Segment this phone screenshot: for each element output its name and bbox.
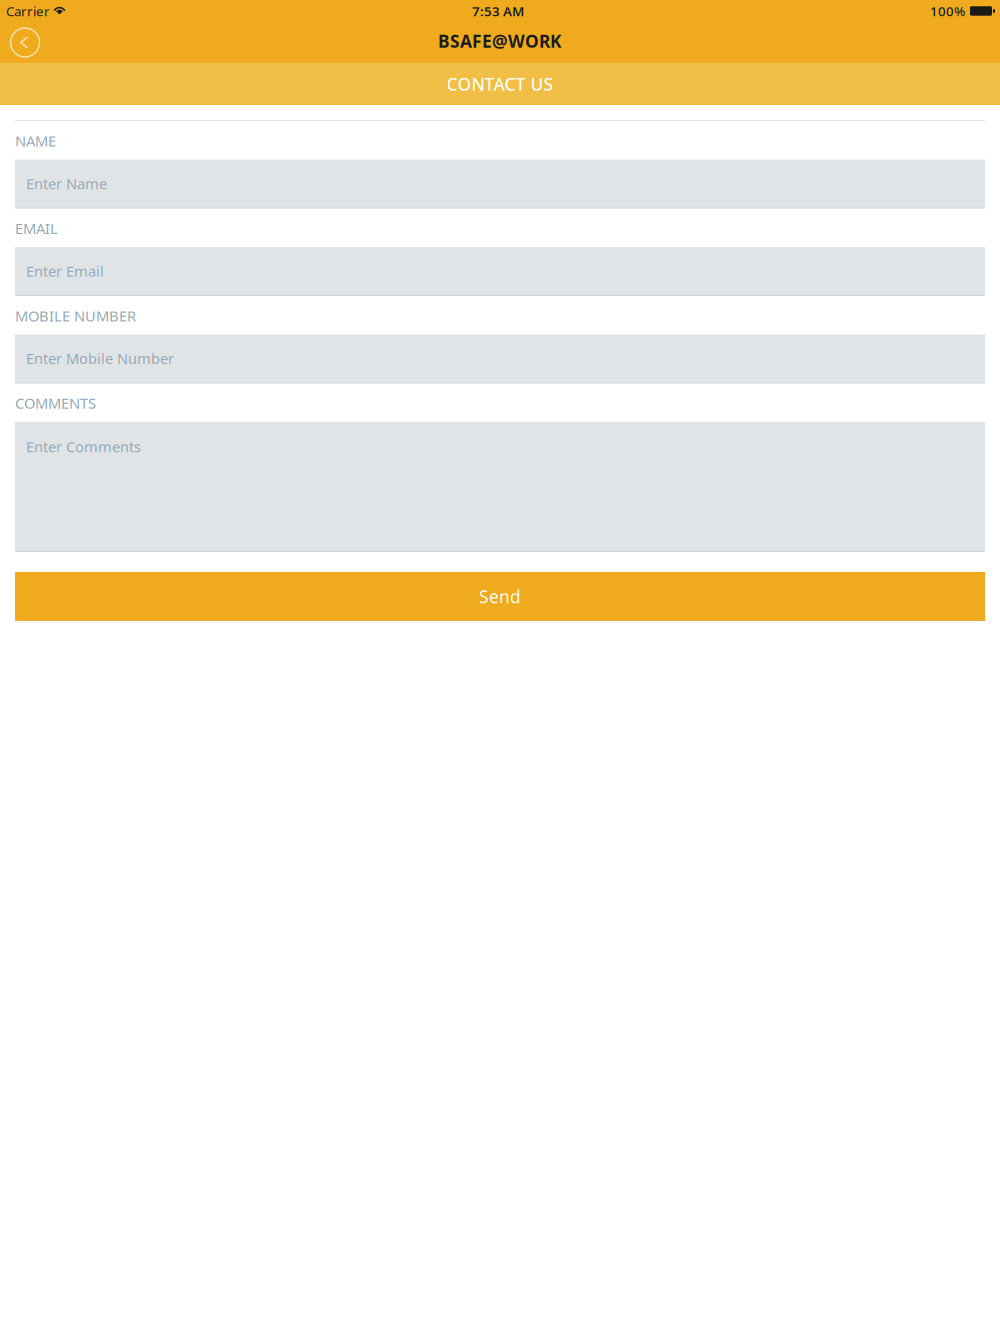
button[interactable]: Back [5, 22, 45, 62]
button[interactable]: Enter Email [15, 247, 985, 296]
staticText: Enter Email [26, 261, 104, 281]
button[interactable]: Enter Comments [15, 422, 985, 552]
button[interactable]: Enter Name [15, 159, 985, 208]
staticText: Enter Mobile Number [26, 349, 174, 368]
staticText: BSAFE@WORK [438, 29, 562, 52]
staticText: Carrier [6, 2, 50, 20]
staticText: EMAIL [15, 218, 58, 238]
staticText: 100% [930, 2, 965, 20]
staticText: COMMENTS [15, 393, 96, 413]
staticText: Enter Comments [26, 437, 141, 456]
staticText: Send [479, 585, 521, 608]
staticText: 7:53 AM [472, 2, 524, 20]
staticText: CONTACT US [446, 72, 553, 95]
staticText: NAME [15, 131, 56, 150]
button[interactable]: Enter Mobile Number [15, 334, 985, 383]
button[interactable]: Send [15, 572, 985, 621]
staticText: Enter Name [26, 174, 107, 193]
staticText: MOBILE NUMBER [15, 306, 136, 325]
